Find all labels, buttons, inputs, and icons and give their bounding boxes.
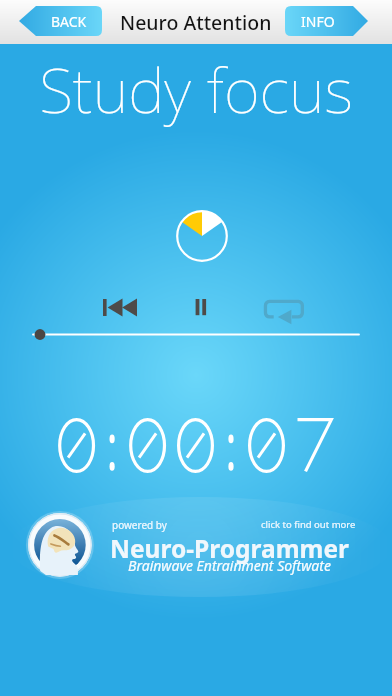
- staticText: BACK: [51, 12, 87, 31]
- button[interactable]: Progress: [0, 322, 392, 348]
- button[interactable]: Previous: [99, 295, 141, 321]
- staticText: powered by: [112, 518, 167, 532]
- button[interactable]: INFO: [285, 6, 368, 36]
- staticText: Neuro-Programmer: [110, 532, 350, 565]
- staticText: Neuro Attention: [120, 9, 272, 36]
- button[interactable]: powered by: [0, 505, 392, 585]
- button[interactable]: Session progress: [176, 210, 228, 262]
- staticText: Study focus: [0, 47, 392, 131]
- staticText: INFO: [301, 12, 335, 31]
- button[interactable]: BACK: [19, 6, 102, 36]
- staticText: Brainwave Entrainment Softwate: [128, 556, 331, 575]
- button[interactable]: Pause: [191, 295, 215, 321]
- staticText: click to find out more: [261, 518, 356, 531]
- button[interactable]: Repeat: [259, 294, 311, 328]
